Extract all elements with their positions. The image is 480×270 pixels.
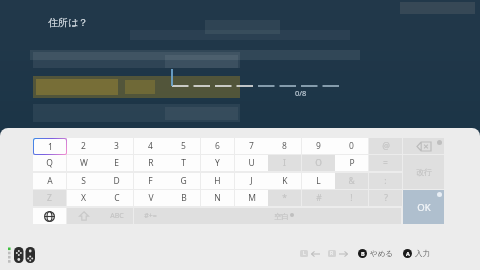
button[interactable]: M (235, 190, 268, 206)
button[interactable]: V (134, 190, 167, 206)
button[interactable]: A (33, 173, 66, 189)
staticText: V (148, 192, 154, 204)
staticText: : (384, 175, 387, 187)
staticText: H (214, 175, 221, 187)
staticText: C (114, 192, 120, 204)
button[interactable]: R (134, 155, 167, 171)
staticText: 1 (48, 141, 53, 153)
staticText: W (80, 157, 88, 169)
staticText: ? (384, 192, 388, 204)
staticText: A (406, 250, 410, 257)
button[interactable]: J (235, 173, 268, 189)
staticText: M (248, 192, 256, 204)
button[interactable]: Backspace (403, 138, 444, 154)
button[interactable]: 6 (201, 138, 234, 154)
staticText: ABC (110, 211, 124, 221)
staticText: 5 (181, 140, 186, 152)
staticText: F (148, 175, 153, 187)
button[interactable]: U (235, 155, 268, 171)
staticText: @ (382, 140, 390, 152)
staticText: P (349, 157, 355, 169)
staticText: やめる (370, 249, 394, 258)
staticText: 1 (47, 140, 52, 152)
button[interactable]: 1 (33, 138, 66, 154)
button[interactable]: X (67, 190, 100, 206)
button[interactable]: 改行 (403, 155, 444, 189)
button[interactable]: 4 (134, 138, 167, 154)
button[interactable]: O (302, 155, 335, 171)
button[interactable]: OK (403, 190, 444, 224)
button[interactable]: Z (33, 190, 66, 206)
button[interactable]: L (302, 173, 335, 189)
staticText: 改行 (416, 167, 432, 177)
button[interactable]: C (100, 190, 133, 206)
button[interactable]: G (167, 173, 200, 189)
button[interactable]: #+= (134, 208, 167, 224)
button[interactable]: P (335, 155, 368, 171)
button[interactable]: 9 (302, 138, 335, 154)
button[interactable]: & (335, 173, 368, 189)
staticText: = (383, 157, 388, 169)
staticText: R (148, 157, 154, 169)
button[interactable]: E (100, 155, 133, 171)
button[interactable]: 0 (335, 138, 368, 154)
button[interactable]: Q (33, 155, 66, 171)
staticText: K (282, 175, 288, 187)
staticText: 3 (114, 140, 119, 152)
button[interactable]: B (167, 190, 200, 206)
button[interactable]: 5 (167, 138, 200, 154)
staticText: 4 (148, 140, 153, 152)
button[interactable]: Y (201, 155, 234, 171)
button[interactable]: I (268, 155, 301, 171)
staticText: A (47, 175, 53, 187)
button[interactable]: @ (369, 138, 402, 154)
staticText: S (81, 175, 86, 187)
button[interactable]: Shift (67, 208, 100, 224)
staticText: R (330, 250, 334, 257)
button[interactable]: W (67, 155, 100, 171)
staticText: X (81, 192, 86, 204)
button[interactable]: 3 (100, 138, 133, 154)
staticText: N (214, 192, 221, 204)
button[interactable]: 1 (34, 139, 66, 154)
button[interactable]: T (167, 155, 200, 171)
staticText: Y (215, 157, 220, 169)
button[interactable]: F (134, 173, 167, 189)
staticText: 空白 (274, 212, 289, 221)
button[interactable]: H (201, 173, 234, 189)
button[interactable]: D (100, 173, 133, 189)
staticText: 0/8 (295, 88, 307, 98)
button[interactable]: 7 (235, 138, 268, 154)
button[interactable]: A (403, 249, 430, 258)
button[interactable]: K (268, 173, 301, 189)
staticText: 9 (316, 140, 321, 152)
button[interactable]: 2 (67, 138, 100, 154)
staticText: B (181, 192, 187, 204)
button[interactable]: # (302, 190, 335, 206)
button[interactable]: ABC (100, 208, 133, 224)
staticText: & (348, 175, 355, 187)
staticText: 7 (249, 140, 254, 152)
button[interactable]: B (358, 249, 394, 258)
button[interactable]: N (201, 190, 234, 206)
staticText: J (250, 175, 253, 187)
staticText: L (316, 175, 321, 187)
button[interactable]: Change input language (33, 208, 66, 224)
staticText: 0 (349, 140, 354, 152)
button[interactable]: S (67, 173, 100, 189)
staticText: O (315, 157, 322, 169)
staticText: 住所は？ (48, 16, 89, 29)
staticText: D (113, 175, 120, 187)
staticText: #+= (144, 211, 157, 221)
staticText: ! (350, 192, 353, 204)
button[interactable]: 8 (268, 138, 301, 154)
staticText: I (283, 157, 286, 169)
staticText: T (181, 157, 186, 169)
staticText: B (361, 250, 365, 257)
